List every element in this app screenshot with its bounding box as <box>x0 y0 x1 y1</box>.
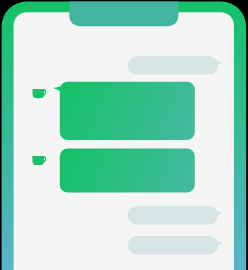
button[interactable]: Incoming message <box>128 206 218 225</box>
button[interactable]: Contact avatar <box>32 156 47 166</box>
button[interactable]: Contact avatar <box>33 89 48 99</box>
button[interactable]: Outgoing message <box>60 149 195 193</box>
button[interactable]: Outgoing message <box>60 82 195 140</box>
button[interactable]: Incoming message <box>128 236 218 255</box>
button[interactable]: Incoming message <box>128 56 218 75</box>
